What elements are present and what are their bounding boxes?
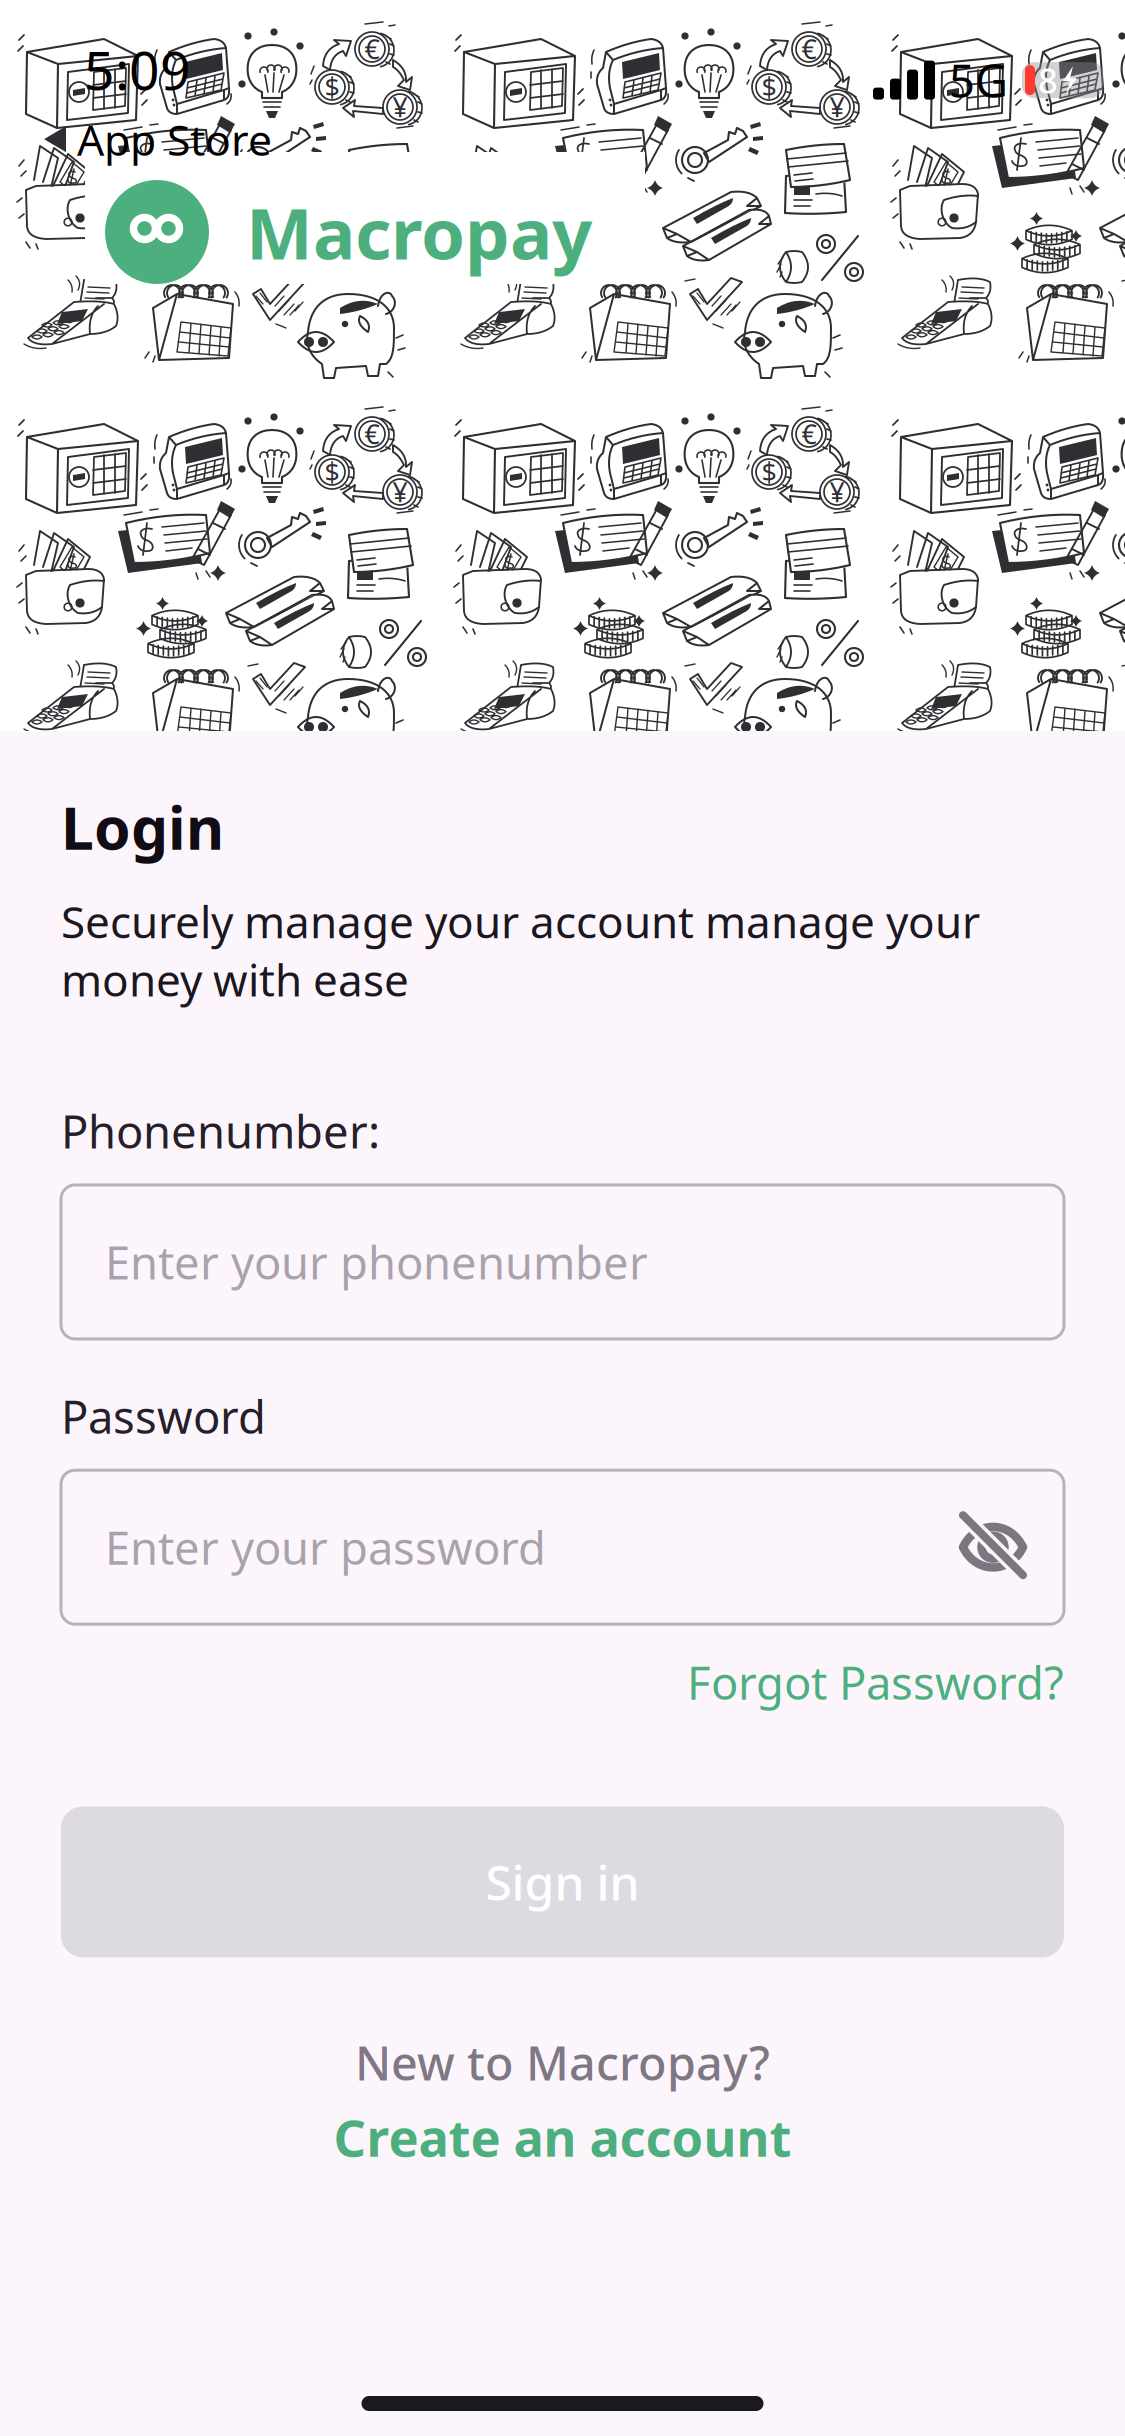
staticText: App Store — [77, 111, 272, 167]
button[interactable]: Show password — [950, 1504, 1036, 1590]
staticText: Phonenumber: — [61, 1101, 380, 1161]
staticText: Sign in — [485, 1850, 639, 1914]
staticText: Password — [61, 1386, 266, 1446]
staticText: $ — [324, 454, 339, 490]
button[interactable]: Create an account — [333, 2103, 791, 2171]
staticText: $ — [761, 454, 776, 490]
staticText: 8 — [1038, 57, 1058, 103]
staticText: € — [801, 416, 816, 452]
staticText: Create an account — [333, 2103, 791, 2171]
staticText: $ — [324, 69, 339, 105]
staticText: ¥ — [392, 474, 407, 510]
staticText: Enter your phonenumber — [105, 1232, 648, 1292]
staticText: Login — [61, 788, 224, 866]
staticText: € — [364, 416, 379, 452]
staticText: Enter your password — [105, 1517, 546, 1577]
staticText: $ — [761, 69, 776, 105]
staticText: Forgot Password? — [687, 1652, 1064, 1712]
staticText: New to Macropay? — [355, 2031, 770, 2093]
staticText: ¥ — [829, 474, 844, 510]
staticText: Macropay — [246, 185, 592, 279]
staticText: ¥ — [829, 89, 844, 125]
staticText: € — [364, 31, 379, 67]
staticText: 5G — [949, 50, 1008, 110]
staticText: € — [801, 31, 816, 67]
staticText: 5:09 — [84, 34, 191, 105]
staticText: Securely manage your account manage your… — [61, 892, 980, 1009]
button[interactable]: Forgot Password? — [61, 1636, 1064, 1728]
staticText: ¥ — [392, 89, 407, 125]
button[interactable]: Sign in — [61, 1806, 1064, 1957]
